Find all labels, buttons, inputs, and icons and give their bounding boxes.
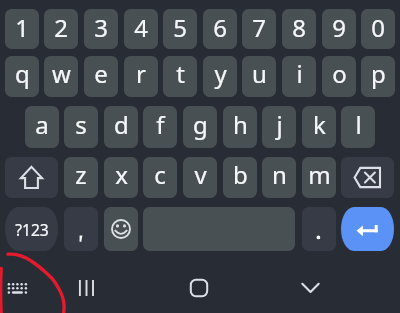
- button[interactable]: m: [302, 157, 336, 198]
- button[interactable]: Hide keyboard: [294, 272, 327, 304]
- staticText: ?123: [15, 219, 49, 240]
- staticText: d: [114, 108, 129, 141]
- staticText: 8: [292, 11, 306, 44]
- button[interactable]: 5: [163, 9, 197, 49]
- button[interactable]: r: [124, 56, 158, 97]
- button[interactable]: 2: [44, 9, 78, 49]
- button[interactable]: 1: [5, 9, 39, 49]
- button[interactable]: p: [361, 56, 395, 97]
- button[interactable]: 8: [282, 9, 316, 49]
- staticText: 7: [252, 11, 266, 44]
- button[interactable]: k: [302, 106, 336, 148]
- button[interactable]: Comma: [64, 207, 98, 251]
- staticText: r: [136, 57, 146, 90]
- staticText: s: [75, 108, 87, 141]
- button[interactable]: Home: [183, 272, 215, 304]
- button[interactable]: 4: [124, 9, 158, 49]
- button[interactable]: 0: [361, 9, 395, 49]
- button[interactable]: z: [64, 157, 98, 198]
- staticText: j: [276, 108, 283, 141]
- staticText: m: [308, 158, 331, 191]
- staticText: k: [313, 108, 326, 141]
- staticText: g: [193, 108, 208, 141]
- staticText: q: [15, 57, 30, 90]
- button[interactable]: d: [104, 106, 138, 148]
- button[interactable]: Change keyboard: [1, 272, 34, 304]
- button[interactable]: 3: [84, 9, 118, 49]
- button[interactable]: 7: [242, 9, 276, 49]
- button[interactable]: Enter: [341, 207, 394, 251]
- staticText: t: [176, 57, 185, 90]
- button[interactable]: v: [183, 157, 217, 198]
- button[interactable]: q: [5, 56, 39, 97]
- button[interactable]: Emoji: [104, 207, 138, 251]
- button[interactable]: l: [341, 106, 375, 148]
- button[interactable]: x: [104, 157, 138, 198]
- staticText: w: [52, 57, 71, 90]
- staticText: 2: [54, 11, 68, 44]
- button[interactable]: e: [84, 56, 118, 97]
- button[interactable]: 6: [203, 9, 237, 49]
- button[interactable]: b: [223, 157, 257, 198]
- button[interactable]: o: [322, 56, 356, 97]
- staticText: 3: [94, 11, 108, 44]
- button[interactable]: j: [262, 106, 296, 148]
- staticText: b: [233, 158, 248, 191]
- staticText: p: [371, 57, 386, 90]
- staticText: 0: [371, 11, 385, 44]
- staticText: v: [194, 158, 207, 191]
- button[interactable]: Recent apps: [70, 272, 103, 304]
- staticText: n: [272, 158, 287, 191]
- staticText: l: [355, 108, 362, 141]
- staticText: f: [156, 108, 165, 141]
- staticText: 6: [213, 11, 227, 44]
- button[interactable]: Backspace: [341, 157, 394, 198]
- button[interactable]: t: [163, 56, 197, 97]
- button[interactable]: g: [183, 106, 217, 148]
- button[interactable]: a: [25, 106, 59, 148]
- staticText: o: [332, 57, 347, 90]
- button[interactable]: ?123: [5, 207, 58, 251]
- button[interactable]: y: [203, 56, 237, 97]
- staticText: 4: [134, 11, 148, 44]
- staticText: a: [35, 108, 49, 141]
- staticText: c: [154, 158, 166, 191]
- button[interactable]: n: [262, 157, 296, 198]
- staticText: 9: [332, 11, 346, 44]
- button[interactable]: h: [223, 106, 257, 148]
- staticText: h: [233, 108, 248, 141]
- button[interactable]: Period: [302, 207, 336, 251]
- button[interactable]: u: [242, 56, 276, 97]
- button[interactable]: s: [64, 106, 98, 148]
- staticText: z: [75, 158, 87, 191]
- staticText: 5: [173, 11, 187, 44]
- button[interactable]: f: [143, 106, 177, 148]
- button[interactable]: Shift: [5, 157, 58, 198]
- button[interactable]: 9: [322, 9, 356, 49]
- staticText: i: [296, 57, 303, 90]
- button[interactable]: w: [44, 56, 78, 97]
- staticText: 1: [15, 11, 29, 44]
- staticText: e: [94, 57, 108, 90]
- staticText: u: [252, 57, 267, 90]
- staticText: x: [115, 158, 128, 191]
- button[interactable]: c: [143, 157, 177, 198]
- staticText: y: [214, 57, 227, 90]
- button[interactable]: i: [282, 56, 316, 97]
